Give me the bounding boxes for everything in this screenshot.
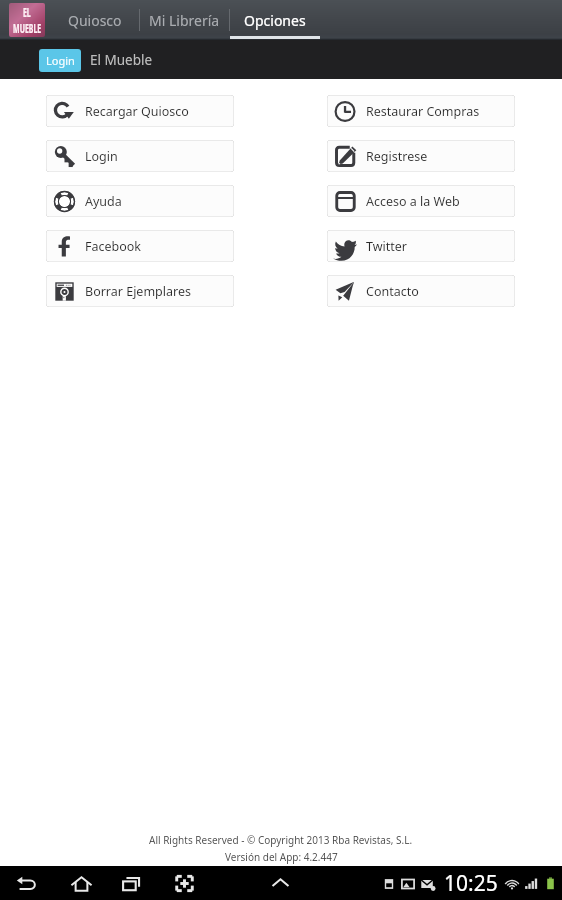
staticText: El Mueble [90, 51, 153, 69]
staticText: Login [46, 53, 75, 68]
button[interactable]: Contacto [327, 275, 515, 307]
button[interactable]: Mi Librería [140, 0, 229, 40]
button[interactable]: El Mueble logo [9, 3, 45, 37]
staticText: Contacto [366, 283, 419, 300]
button[interactable]: Quiosco [50, 0, 139, 40]
button[interactable]: Restaurar Compras [327, 95, 515, 127]
button[interactable]: Recargar Quiosco [46, 95, 234, 127]
staticText: Recargar Quiosco [85, 103, 189, 120]
button[interactable]: Twitter [327, 230, 515, 262]
staticText: Opciones [244, 11, 306, 30]
button[interactable]: Back [9, 866, 43, 900]
button[interactable]: Expand [263, 866, 297, 900]
staticText: Quiosco [68, 11, 122, 30]
staticText: Borrar Ejemplares [85, 283, 191, 300]
staticText: Twitter [366, 238, 407, 255]
button[interactable]: Ayuda [46, 185, 234, 217]
button[interactable]: Facebook [46, 230, 234, 262]
staticText: Registrese [366, 148, 428, 165]
button[interactable]: Recents [114, 866, 148, 900]
button[interactable]: Acceso a la Web [327, 185, 515, 217]
button[interactable]: Registrese [327, 140, 515, 172]
staticText: Restaurar Compras [366, 103, 480, 120]
staticText: Versión del App: 4.2.447 [225, 850, 338, 864]
button[interactable]: Opciones [230, 0, 320, 40]
staticText: Ayuda [85, 193, 122, 210]
staticText: 10:25 [444, 869, 498, 898]
staticText: Login [85, 148, 118, 165]
button[interactable]: Home [64, 866, 98, 900]
staticText: Mi Librería [149, 11, 220, 30]
staticText: MUEBLE [13, 20, 41, 36]
staticText: Acceso a la Web [366, 193, 460, 210]
button[interactable]: Login [46, 140, 234, 172]
button[interactable]: Login [39, 49, 81, 72]
button[interactable]: Borrar Ejemplares [46, 275, 234, 307]
staticText: All Rights Reserved - © Copyright 2013 R… [149, 833, 413, 847]
staticText: Facebook [85, 238, 142, 255]
button[interactable]: Screenshot [167, 866, 201, 900]
staticText: EL [23, 4, 31, 20]
